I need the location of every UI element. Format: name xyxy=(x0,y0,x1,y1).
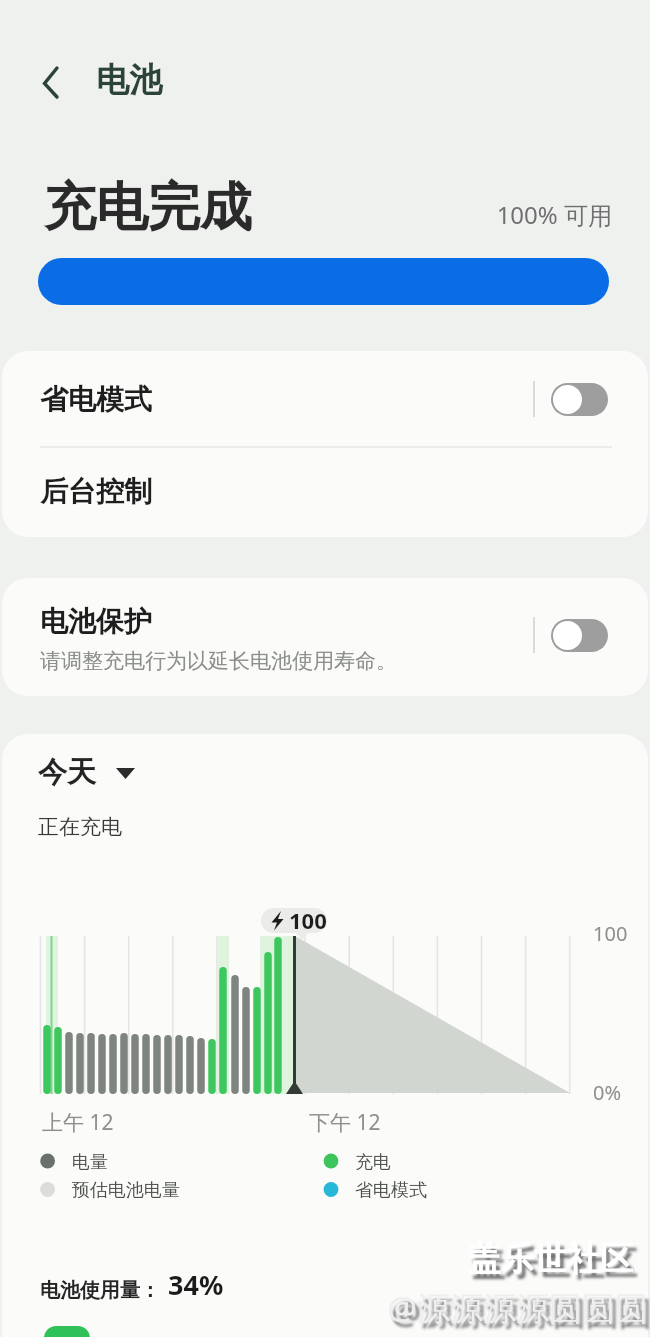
staticText: 电量 xyxy=(72,1151,108,1174)
button[interactable]: 今天 xyxy=(38,752,148,794)
staticText: 100 xyxy=(593,920,628,947)
staticText: 电池使用量： xyxy=(40,1278,160,1303)
staticText: 充电完成 xyxy=(44,175,252,241)
staticText: 电池 xyxy=(96,59,162,101)
staticText: 预估电池电量 xyxy=(72,1179,180,1202)
staticText: 省电模式 xyxy=(40,382,152,417)
button[interactable]: 电池保护 xyxy=(2,578,648,696)
button[interactable]: 省电模式 xyxy=(2,351,648,446)
staticText: 34% xyxy=(168,1266,224,1303)
staticText: 下午 12 xyxy=(309,1108,381,1137)
staticText: 省电模式 xyxy=(355,1179,427,1202)
staticText: 今天 xyxy=(38,754,96,791)
staticText: 100% 可用 xyxy=(400,198,612,231)
staticText: 100 xyxy=(289,905,327,935)
staticText: 充电 xyxy=(355,1151,391,1174)
staticText: @源源源源圆圆圆 xyxy=(330,1285,648,1330)
button[interactable] xyxy=(551,619,608,652)
staticText: 0% xyxy=(593,1079,622,1106)
staticText: 电池保护 xyxy=(40,604,152,639)
staticText: 上午 12 xyxy=(42,1108,114,1137)
staticText: 后台控制 xyxy=(40,474,152,509)
staticText: 正在充电 xyxy=(38,814,122,840)
staticText: 盖乐世社区 xyxy=(330,1238,633,1280)
button[interactable]: 后台控制 xyxy=(2,447,648,537)
staticText: 请调整充电行为以延长电池使用寿命。 xyxy=(40,648,397,674)
button[interactable] xyxy=(34,58,74,106)
button[interactable] xyxy=(551,383,608,416)
